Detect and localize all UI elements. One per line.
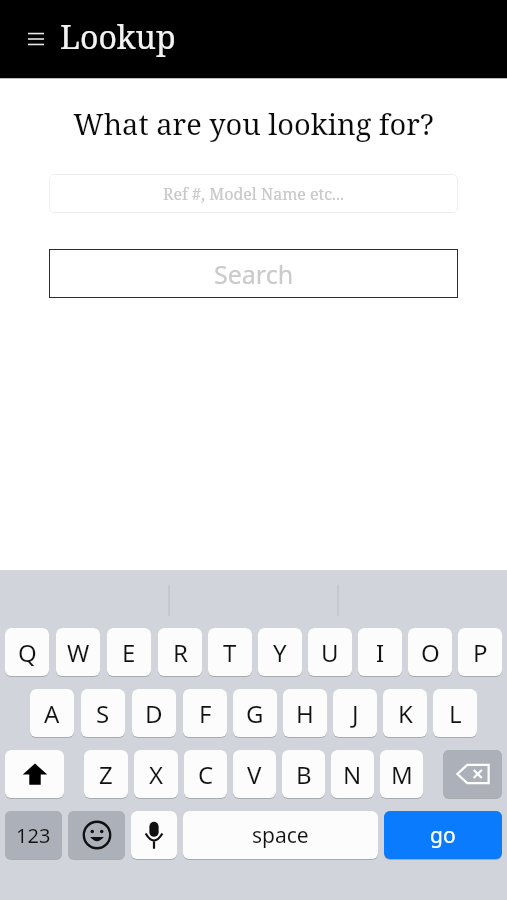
staticText: X	[149, 758, 164, 791]
staticText: K	[398, 697, 413, 730]
button[interactable]: M	[380, 749, 423, 798]
button[interactable]: Emoji	[68, 810, 125, 859]
staticText: Y	[273, 636, 287, 669]
button[interactable]: V	[233, 749, 276, 798]
staticText: H	[296, 697, 314, 730]
staticText: J	[352, 697, 359, 730]
staticText: L	[449, 697, 462, 730]
staticText: What are you looking for?	[0, 104, 507, 143]
button[interactable]: S	[81, 688, 125, 737]
button[interactable]: X	[134, 749, 178, 798]
button[interactable]: R	[158, 627, 202, 676]
staticText: G	[246, 697, 264, 730]
button[interactable]: L	[433, 688, 477, 737]
staticText: S	[96, 697, 110, 730]
staticText: M	[391, 758, 413, 791]
button[interactable]: Y	[258, 627, 302, 676]
button[interactable]: Search	[49, 249, 458, 298]
staticText: Ref #, Model Name etc...	[163, 183, 345, 205]
staticText: Lookup	[60, 15, 176, 59]
staticText: P	[473, 636, 488, 669]
staticText: I	[376, 636, 385, 669]
staticText: N	[343, 758, 362, 791]
button[interactable]: C	[184, 749, 227, 798]
staticText: C	[198, 758, 214, 791]
button[interactable]: Q	[5, 627, 49, 676]
button[interactable]: N	[331, 749, 374, 798]
button[interactable]: U	[308, 627, 352, 676]
button[interactable]: P	[458, 627, 502, 676]
button[interactable]: K	[383, 688, 427, 737]
button[interactable]: Z	[84, 749, 128, 798]
button[interactable]: I	[358, 627, 402, 676]
button[interactable]: W	[56, 627, 100, 676]
button[interactable]: space	[183, 810, 378, 859]
button[interactable]: H	[283, 688, 327, 737]
staticText: V	[247, 758, 262, 791]
staticText: R	[173, 636, 188, 669]
button[interactable]: O	[408, 627, 452, 676]
button[interactable]: Voice input	[131, 810, 177, 859]
button[interactable]: T	[208, 627, 252, 676]
staticText: go	[430, 821, 456, 850]
button[interactable]: D	[132, 688, 176, 737]
staticText: U	[321, 636, 339, 669]
staticText: Z	[99, 758, 113, 791]
button[interactable]: Menu	[22, 24, 50, 54]
staticText: E	[122, 636, 136, 669]
staticText: B	[296, 758, 312, 791]
staticText: F	[199, 697, 212, 730]
staticText: O	[421, 636, 440, 669]
button[interactable]: 123	[5, 810, 62, 859]
button[interactable]: Backspace	[443, 749, 502, 798]
staticText: space	[252, 821, 309, 850]
button[interactable]: B	[282, 749, 325, 798]
button[interactable]: G	[233, 688, 277, 737]
staticText: D	[145, 697, 163, 730]
button[interactable]: F	[183, 688, 227, 737]
staticText: T	[223, 636, 237, 669]
button[interactable]: E	[107, 627, 151, 676]
button[interactable]: go	[384, 810, 502, 859]
staticText: Q	[18, 636, 37, 669]
staticText: W	[67, 636, 90, 669]
button[interactable]: Ref #, Model Name etc...	[49, 174, 458, 213]
button[interactable]: J	[333, 688, 377, 737]
button[interactable]: A	[30, 688, 74, 737]
staticText: Search	[214, 257, 294, 291]
staticText: A	[44, 697, 60, 730]
staticText: 123	[16, 822, 51, 849]
button[interactable]: Shift	[5, 749, 64, 798]
